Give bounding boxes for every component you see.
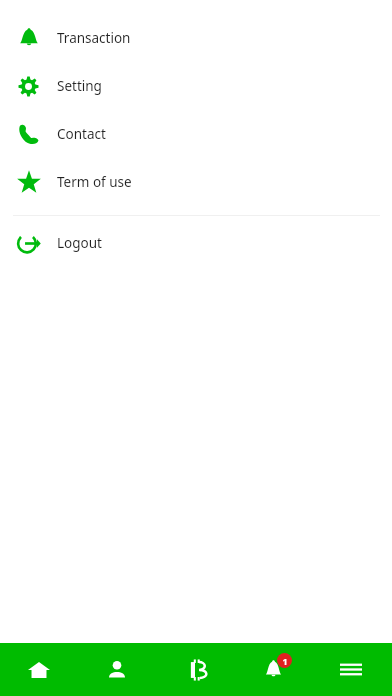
staticText: Transaction (57, 29, 131, 47)
button[interactable]: Logout (0, 219, 392, 267)
staticText: Setting (57, 77, 102, 95)
button[interactable]: Menu (312, 643, 390, 696)
staticText: Contact (57, 125, 106, 143)
button[interactable]: Transaction (0, 14, 392, 62)
staticText: 1 (282, 655, 288, 667)
button[interactable]: Contact (0, 110, 392, 158)
staticText: Logout (57, 234, 102, 252)
button[interactable]: Term of use (0, 158, 392, 206)
button[interactable]: Bitcoin (156, 643, 234, 696)
button[interactable]: Profile (78, 643, 156, 696)
button[interactable]: Notifications (234, 643, 312, 696)
button[interactable]: Home (0, 643, 78, 696)
button[interactable]: Setting (0, 62, 392, 110)
staticText: Term of use (57, 173, 132, 191)
